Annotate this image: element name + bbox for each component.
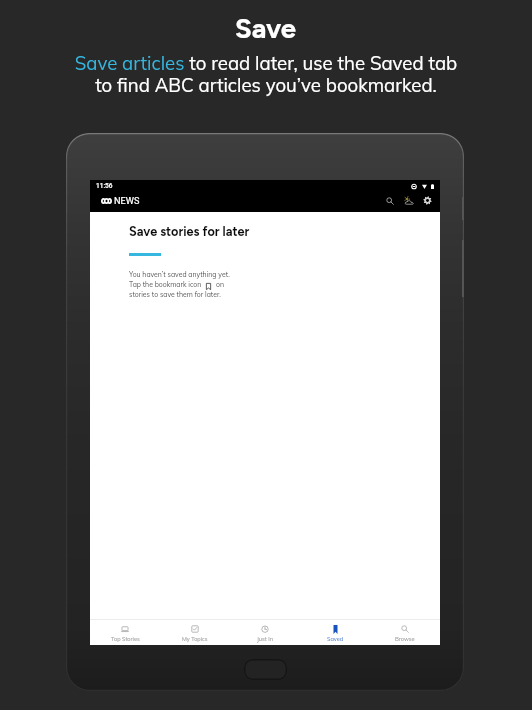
staticText: Save articles to read later, use the Sav… — [16, 51, 516, 97]
button[interactable]: Top Stories — [90, 620, 160, 645]
button[interactable]: Home — [244, 659, 287, 680]
staticText: on — [216, 280, 224, 289]
staticText: NEWS — [114, 195, 140, 206]
staticText: Save stories for later — [129, 224, 250, 239]
button[interactable]: My Topics — [160, 620, 230, 645]
staticText: Saved — [327, 635, 344, 642]
staticText: Tap the bookmark icon — [129, 280, 202, 289]
staticText: stories to save them for later. — [129, 290, 221, 299]
button[interactable]: Browse — [370, 620, 440, 645]
button[interactable]: Just In — [230, 620, 300, 645]
button[interactable]: Saved — [300, 620, 370, 645]
staticText: 11:56 — [96, 182, 113, 190]
button[interactable]: Settings — [418, 191, 437, 210]
staticText: My Topics — [182, 635, 208, 642]
staticText: Just In — [257, 635, 273, 642]
staticText: Top Stories — [111, 635, 140, 642]
staticText: Save — [235, 12, 297, 45]
button[interactable]: Weather — [399, 191, 418, 210]
staticText: Browse — [395, 635, 415, 642]
staticText: You haven’t saved anything yet. — [129, 270, 230, 279]
button[interactable]: Search — [380, 191, 399, 210]
